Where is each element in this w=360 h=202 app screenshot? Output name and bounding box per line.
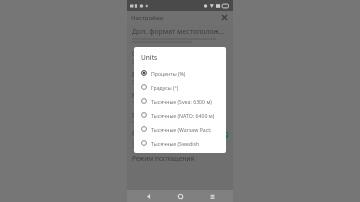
staticText: Настройки <box>131 14 164 22</box>
button[interactable]: Доп. формат местоположения <box>127 26 233 44</box>
button[interactable]: Единицы измерения <box>127 69 233 86</box>
staticText: Скрыть строку состояния <box>132 129 218 139</box>
button[interactable]: Тысячные (Svea: 6300 м) <box>141 94 221 108</box>
button[interactable]: Главный экран <box>169 190 191 202</box>
button[interactable]: Тысячные (Warsaw Pact: 6000 м) <box>141 122 221 136</box>
button[interactable]: Скрыть строку состояния <box>222 132 228 138</box>
staticText: Тысячные (Svea: 6300 м) <box>151 98 212 105</box>
button[interactable]: Формат координат <box>127 48 233 65</box>
staticText: Режим поглощения <box>132 154 195 163</box>
button[interactable]: Закрыть <box>220 13 229 22</box>
staticText: Тысячные (NATO: 6400 м) <box>151 112 215 119</box>
staticText: Проценты (%) <box>151 70 186 77</box>
button[interactable]: Режим поглощения <box>127 153 233 164</box>
staticText: Тысячные (Warsaw Pact: 6000 м) <box>151 126 221 133</box>
button[interactable]: Тысячные (Swedish "Streck": 6300 м) <box>141 136 221 150</box>
staticText: Тысячные (Swedish "Streck": 6300 м) <box>151 140 221 147</box>
staticText: Формат координат <box>132 49 192 58</box>
staticText: Градусы (°) <box>151 84 179 91</box>
staticText: Units <box>141 53 158 62</box>
staticText: Масштаб карты <box>132 91 182 100</box>
button[interactable]: Обзор <box>201 190 223 202</box>
button[interactable]: Путь к кэшу карт <box>127 110 233 124</box>
staticText: Доп. формат местоположения <box>132 27 228 37</box>
button[interactable]: Масштаб карты <box>127 90 233 104</box>
button[interactable]: Градусы (°) <box>141 80 221 94</box>
button[interactable]: Скрыть строку состояния <box>127 128 233 149</box>
button[interactable]: Назад <box>137 190 159 202</box>
staticText: Путь к кэшу карт <box>132 111 185 120</box>
button[interactable]: Проценты (%) <box>141 66 221 80</box>
button[interactable]: Тысячные (NATO: 6400 м) <box>141 108 221 122</box>
staticText: Единицы измерения <box>132 70 198 79</box>
